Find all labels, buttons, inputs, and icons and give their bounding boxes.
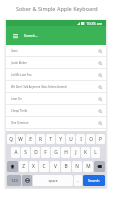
button[interactable]: K <box>81 147 90 158</box>
button[interactable]: Switch keyboard <box>22 175 32 186</box>
button[interactable]: Gone <box>6 45 106 57</box>
staticText: . <box>77 177 79 184</box>
staticText: Z <box>22 163 25 170</box>
staticText: F <box>44 149 47 156</box>
staticText: 123 <box>11 178 18 183</box>
staticText: V <box>54 163 57 170</box>
button[interactable]: . <box>74 175 82 186</box>
staticText: Justin Bieber <box>11 61 96 65</box>
staticText: C <box>42 163 46 170</box>
staticText: We Don't Talk Anymore (feat. Selena Gome… <box>11 85 96 89</box>
button[interactable]: Justin Bieber <box>6 57 106 69</box>
staticText: T <box>49 136 52 143</box>
button[interactable]: Let Me Love You <box>6 69 106 81</box>
button[interactable]: D <box>31 147 40 158</box>
button[interactable]: 123 <box>7 175 21 186</box>
staticText: O <box>89 136 93 143</box>
button[interactable]: U <box>66 134 75 144</box>
button[interactable]: P <box>96 134 105 144</box>
staticText: Gone <box>11 49 96 53</box>
button[interactable]: We Don't Talk Anymore (feat. Selena Gome… <box>6 81 106 93</box>
staticText: R <box>39 136 42 143</box>
staticText: Lean On <box>11 97 96 101</box>
button[interactable]: A <box>11 147 20 158</box>
button[interactable]: Q <box>7 134 15 144</box>
staticText: S <box>24 149 27 156</box>
button[interactable]: Cheap Thrills <box>6 105 106 117</box>
button[interactable]: Z <box>19 161 28 172</box>
staticText: H <box>64 149 68 156</box>
staticText: N <box>75 163 79 170</box>
staticText: Sober & Simple Apple Keyboard <box>16 5 98 12</box>
staticText: B <box>64 163 68 170</box>
button[interactable]: C <box>39 161 49 172</box>
staticText: A <box>14 149 18 156</box>
button[interactable]: Y <box>56 134 65 144</box>
button[interactable]: F <box>41 147 50 158</box>
button[interactable]: O <box>86 134 95 144</box>
staticText: 10:35 am <box>86 21 103 26</box>
button[interactable]: I <box>76 134 85 144</box>
button[interactable]: H <box>61 147 70 158</box>
staticText: X <box>32 163 35 170</box>
button[interactable]: Lean On <box>6 93 106 105</box>
button[interactable]: L <box>91 147 100 158</box>
staticText: Q <box>9 136 13 143</box>
button[interactable]: One Direction <box>6 117 106 129</box>
staticText: P <box>99 136 102 143</box>
button[interactable]: J <box>71 147 80 158</box>
staticText: W <box>18 136 23 143</box>
button[interactable]: T <box>46 134 55 144</box>
button[interactable]: X <box>29 161 38 172</box>
button[interactable]: W <box>16 134 25 144</box>
staticText: U <box>69 136 73 143</box>
button[interactable]: B <box>61 161 71 172</box>
button[interactable]: Backspace <box>94 161 105 172</box>
staticText: space <box>48 178 58 183</box>
staticText: Cheap Thrills <box>11 109 96 113</box>
button[interactable]: S <box>21 147 30 158</box>
button[interactable]: N <box>72 161 82 172</box>
staticText: Search <box>88 178 100 183</box>
button[interactable]: G <box>51 147 60 158</box>
button[interactable]: M <box>83 161 93 172</box>
staticText: D <box>34 149 38 156</box>
staticText: Let Me Love You <box>11 73 96 77</box>
button[interactable]: E <box>26 134 35 144</box>
staticText: Search... <box>24 33 38 38</box>
button[interactable]: Shift <box>7 161 18 172</box>
staticText: M <box>86 163 91 170</box>
staticText: Y <box>59 136 62 143</box>
staticText: G <box>54 149 58 156</box>
button[interactable]: Menu <box>11 31 20 40</box>
button[interactable]: space <box>33 175 73 186</box>
staticText: J <box>75 149 77 156</box>
staticText: One Direction <box>11 121 96 125</box>
staticText: K <box>84 149 87 156</box>
staticText: I <box>80 136 82 143</box>
staticText: E <box>29 136 32 143</box>
staticText: L <box>94 149 97 156</box>
button[interactable]: V <box>50 161 60 172</box>
button[interactable]: R <box>36 134 45 144</box>
button[interactable]: Search <box>83 175 105 186</box>
